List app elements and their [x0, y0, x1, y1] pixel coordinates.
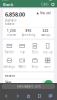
staticText: Recent	[5, 74, 15, 77]
staticText: Savings	[41, 33, 50, 37]
staticText: New card	[40, 11, 51, 15]
staticText: 320	[42, 29, 48, 33]
button[interactable]: Exchange	[3, 56, 16, 69]
button[interactable]: Cards	[40, 3, 49, 6]
button[interactable]: Salary	[3, 79, 54, 85]
button[interactable]: Back	[1, 92, 12, 100]
button[interactable]: Add	[44, 80, 53, 89]
button[interactable]: Bank	[2, 2, 14, 7]
staticText: Income	[6, 33, 16, 37]
button[interactable]: Top up	[41, 41, 54, 55]
staticText: Top up	[43, 50, 53, 54]
staticText: +1,200	[41, 81, 52, 84]
staticText: Wallet	[18, 65, 26, 68]
staticText: 9:41	[2, 0, 9, 1]
staticText: Available balance	[5, 19, 17, 26]
staticText: 6,858.00	[5, 11, 25, 18]
button[interactable]: Shop	[28, 56, 41, 69]
staticText: Salary	[5, 81, 11, 84]
staticText: Pay	[20, 50, 24, 54]
button[interactable]: Tabs	[45, 92, 56, 100]
staticText: bank.example.com	[17, 85, 40, 88]
button[interactable]: Bills	[28, 41, 41, 55]
staticText: Shop	[31, 65, 38, 68]
button[interactable]: Bookmarks	[34, 92, 45, 100]
staticText: 1,230	[7, 29, 16, 33]
staticText: Cards	[41, 3, 48, 6]
staticText: Exchange	[3, 65, 15, 68]
staticText: Bills	[32, 50, 38, 54]
button[interactable]: Menu	[49, 2, 55, 6]
button[interactable]: More	[41, 56, 54, 69]
button[interactable]: Pay	[16, 41, 29, 55]
staticText: 890	[25, 29, 31, 33]
staticText: More	[44, 65, 51, 68]
staticText: Transfer	[4, 50, 14, 54]
button[interactable]: Transfer	[3, 41, 16, 55]
staticText: Bank	[3, 2, 13, 7]
button[interactable]: New card	[35, 11, 52, 16]
button[interactable]: Wallet	[16, 56, 29, 69]
button[interactable]: Forward	[12, 92, 23, 100]
button[interactable]: Share	[23, 92, 34, 100]
staticText: Spending	[21, 33, 35, 37]
